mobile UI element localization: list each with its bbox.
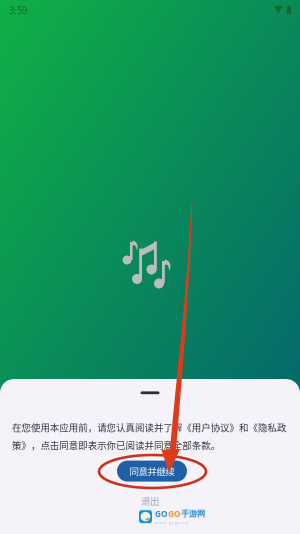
- staticText: 在您使用本应用前，请您认真阅读并了解《用户协议》和《隐私政: [12, 420, 286, 434]
- staticText: GO: [168, 508, 181, 519]
- button[interactable]: 同意并继续: [117, 461, 187, 482]
- staticText: GO: [155, 508, 168, 519]
- staticText: 同意并继续: [129, 464, 174, 478]
- button[interactable]: 退出: [130, 495, 170, 507]
- staticText: 退出: [141, 494, 159, 507]
- staticText: w w w . g o g o . c n: [155, 520, 188, 525]
- staticText: 手游网: [181, 509, 205, 519]
- staticText: 策》，点击同意即表示你已阅读并同意全部条款。: [12, 438, 220, 452]
- staticText: 3:59: [9, 3, 27, 17]
